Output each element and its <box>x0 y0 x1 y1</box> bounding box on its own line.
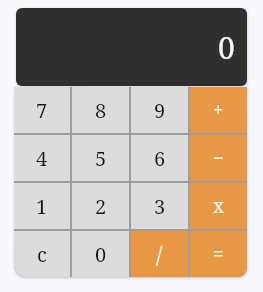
staticText: 4 <box>36 145 48 172</box>
button[interactable]: − <box>190 135 247 181</box>
button[interactable]: 0 <box>72 231 129 277</box>
button[interactable]: x <box>190 183 247 229</box>
button[interactable]: 3 <box>131 183 188 229</box>
staticText: 0 <box>218 27 235 68</box>
staticText: − <box>213 145 225 171</box>
button[interactable]: 6 <box>131 135 188 181</box>
button[interactable]: 8 <box>72 87 129 133</box>
staticText: c <box>37 241 47 268</box>
button[interactable]: + <box>190 87 247 133</box>
staticText: 0 <box>95 241 107 268</box>
staticText: 8 <box>95 97 107 124</box>
staticText: + <box>213 97 224 123</box>
button[interactable]: 1 <box>14 183 70 229</box>
button[interactable]: 4 <box>14 135 70 181</box>
button[interactable]: 5 <box>72 135 129 181</box>
button[interactable]: / <box>131 231 188 277</box>
staticText: 6 <box>154 145 166 172</box>
staticText: 2 <box>95 193 107 220</box>
staticText: x <box>213 193 224 219</box>
button[interactable]: 7 <box>14 87 70 133</box>
staticText: / <box>156 239 163 269</box>
staticText: 9 <box>154 97 166 124</box>
button[interactable]: = <box>190 231 247 277</box>
staticText: 7 <box>36 97 48 124</box>
button[interactable]: c <box>14 231 70 277</box>
staticText: 1 <box>36 193 48 220</box>
staticText: 5 <box>95 145 107 172</box>
button[interactable]: 9 <box>131 87 188 133</box>
staticText: = <box>213 241 224 267</box>
staticText: 3 <box>154 193 166 220</box>
button[interactable]: 2 <box>72 183 129 229</box>
